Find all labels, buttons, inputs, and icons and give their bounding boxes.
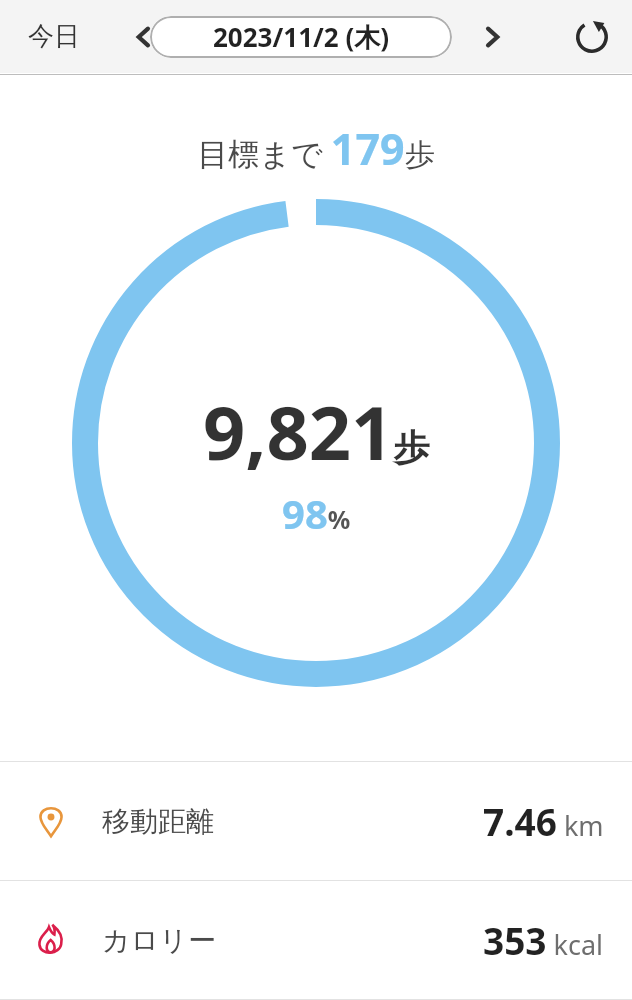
staticText: 7.46 km (483, 796, 604, 846)
button[interactable]: Refresh (566, 11, 618, 63)
button[interactable]: Next day (472, 17, 512, 57)
button[interactable]: 移動距離 (0, 762, 632, 880)
button[interactable]: 2023/11/2 (木) (150, 16, 452, 58)
button[interactable]: Previous day (124, 17, 164, 57)
staticText: 目標まで 179歩 (197, 119, 435, 178)
staticText: 今日 (28, 20, 80, 53)
staticText: カロリー (102, 923, 216, 958)
staticText: 98% (282, 486, 351, 540)
button[interactable]: 今日 (18, 14, 90, 59)
button[interactable]: カロリー (0, 881, 632, 999)
staticText: 353 kcal (483, 915, 604, 965)
staticText: 移動距離 (102, 804, 214, 839)
staticText: 2023/11/2 (木) (213, 19, 390, 55)
staticText: 9,821歩 (203, 381, 430, 482)
